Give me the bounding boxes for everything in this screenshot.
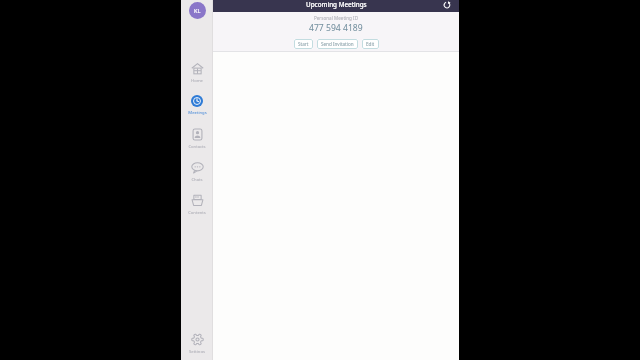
button[interactable]: Start bbox=[294, 39, 313, 49]
staticText: Home bbox=[191, 78, 203, 82]
button[interactable]: Edit bbox=[362, 39, 379, 49]
staticText: KL bbox=[194, 7, 201, 15]
staticText: Meetings bbox=[188, 110, 207, 115]
staticText: Edit bbox=[366, 41, 375, 47]
button[interactable]: Settings bbox=[181, 327, 213, 353]
staticText: Start bbox=[298, 41, 309, 47]
button[interactable]: Home bbox=[181, 56, 213, 82]
button[interactable]: Chats bbox=[181, 155, 213, 181]
button[interactable]: Contacts bbox=[181, 122, 213, 148]
staticText: Personal Meeting ID bbox=[314, 15, 359, 21]
staticText: 477 594 4189 bbox=[309, 22, 363, 34]
staticText: Send Invitation bbox=[321, 41, 354, 47]
staticText: Settings bbox=[189, 349, 205, 353]
button[interactable]: Contents bbox=[181, 188, 213, 214]
button[interactable]: Send Invitation bbox=[317, 39, 358, 49]
button[interactable]: Refresh bbox=[441, 0, 452, 10]
button[interactable]: Meetings bbox=[181, 89, 213, 115]
staticText: Chats bbox=[191, 177, 203, 181]
button[interactable]: Profile bbox=[189, 2, 206, 19]
staticText: Contents bbox=[188, 210, 206, 214]
staticText: Upcoming Meetings bbox=[306, 0, 367, 9]
staticText: Contacts bbox=[188, 144, 206, 148]
